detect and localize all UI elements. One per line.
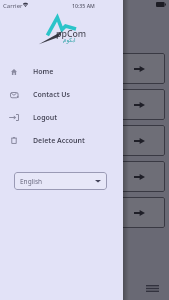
button[interactable]: English [14, 172, 107, 190]
staticText: Home [33, 67, 54, 77]
button[interactable]: Delete Account [0, 129, 123, 152]
staticText: Delete Account [33, 136, 85, 146]
button[interactable]: Contact Us [0, 83, 123, 106]
button[interactable] [10, 53, 165, 84]
staticText: Carrier [3, 2, 23, 10]
button[interactable] [10, 161, 165, 192]
staticText: ابكوم [63, 37, 76, 44]
staticText: ppCom [56, 28, 87, 40]
staticText: Contact Us [33, 90, 71, 100]
button[interactable]: Menu [142, 279, 163, 298]
button[interactable]: Home [0, 60, 123, 83]
staticText: English [20, 177, 43, 186]
button[interactable]: Logout [0, 106, 123, 129]
staticText: 10:35 AM [72, 2, 95, 9]
button[interactable] [10, 197, 165, 228]
staticText: Logout [33, 113, 58, 123]
button[interactable] [10, 125, 165, 156]
button[interactable] [10, 89, 165, 120]
